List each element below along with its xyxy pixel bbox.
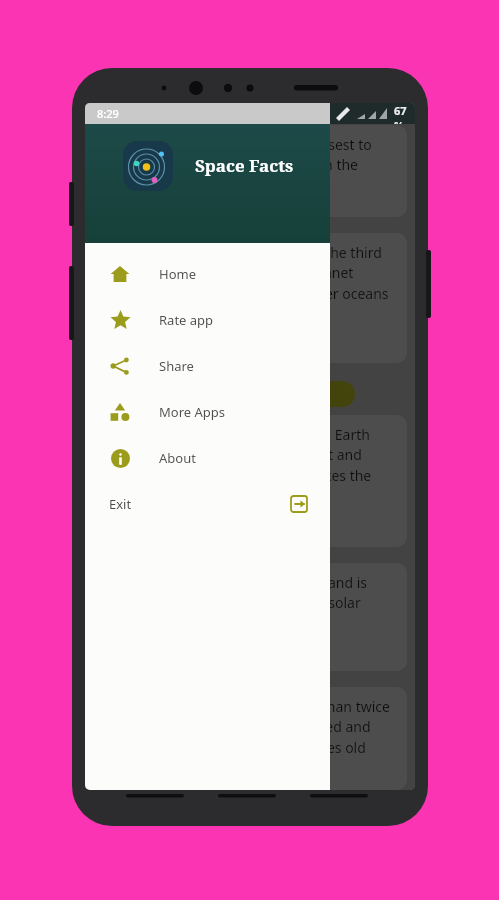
button[interactable]: Exit	[85, 481, 330, 527]
button[interactable]: Share	[85, 343, 330, 389]
staticText: Mars is a dusty, cold desert world and i…	[105, 573, 395, 634]
staticText: Home	[159, 265, 196, 283]
staticText: Space Facts	[195, 154, 294, 177]
staticText: Earth is our home, a rocky world, the th…	[105, 243, 395, 304]
staticText: Jupiter is a massive planet, more than t…	[105, 697, 395, 758]
other: Exit	[290, 495, 308, 513]
staticText: Exit	[109, 495, 132, 513]
other: Rate app	[110, 310, 131, 331]
button[interactable]: About	[85, 435, 330, 481]
staticText: 67%	[394, 103, 415, 124]
staticText: More Apps	[159, 403, 226, 421]
staticText: The Moon is the first place beyond Earth…	[105, 425, 395, 507]
staticText: About	[159, 449, 196, 467]
button[interactable]: Home	[85, 251, 330, 297]
staticText: Share	[159, 357, 194, 375]
staticText: Rate app	[159, 311, 214, 329]
other: Home	[110, 264, 130, 284]
button[interactable]: More Apps	[85, 389, 330, 435]
other: Share	[110, 356, 130, 376]
staticText: 8:29	[97, 106, 119, 121]
button[interactable]: Rate app	[85, 297, 330, 343]
other: More Apps	[110, 402, 130, 422]
staticText: Mercury is the smallest planet, closest …	[105, 135, 395, 196]
other: About	[111, 449, 130, 468]
